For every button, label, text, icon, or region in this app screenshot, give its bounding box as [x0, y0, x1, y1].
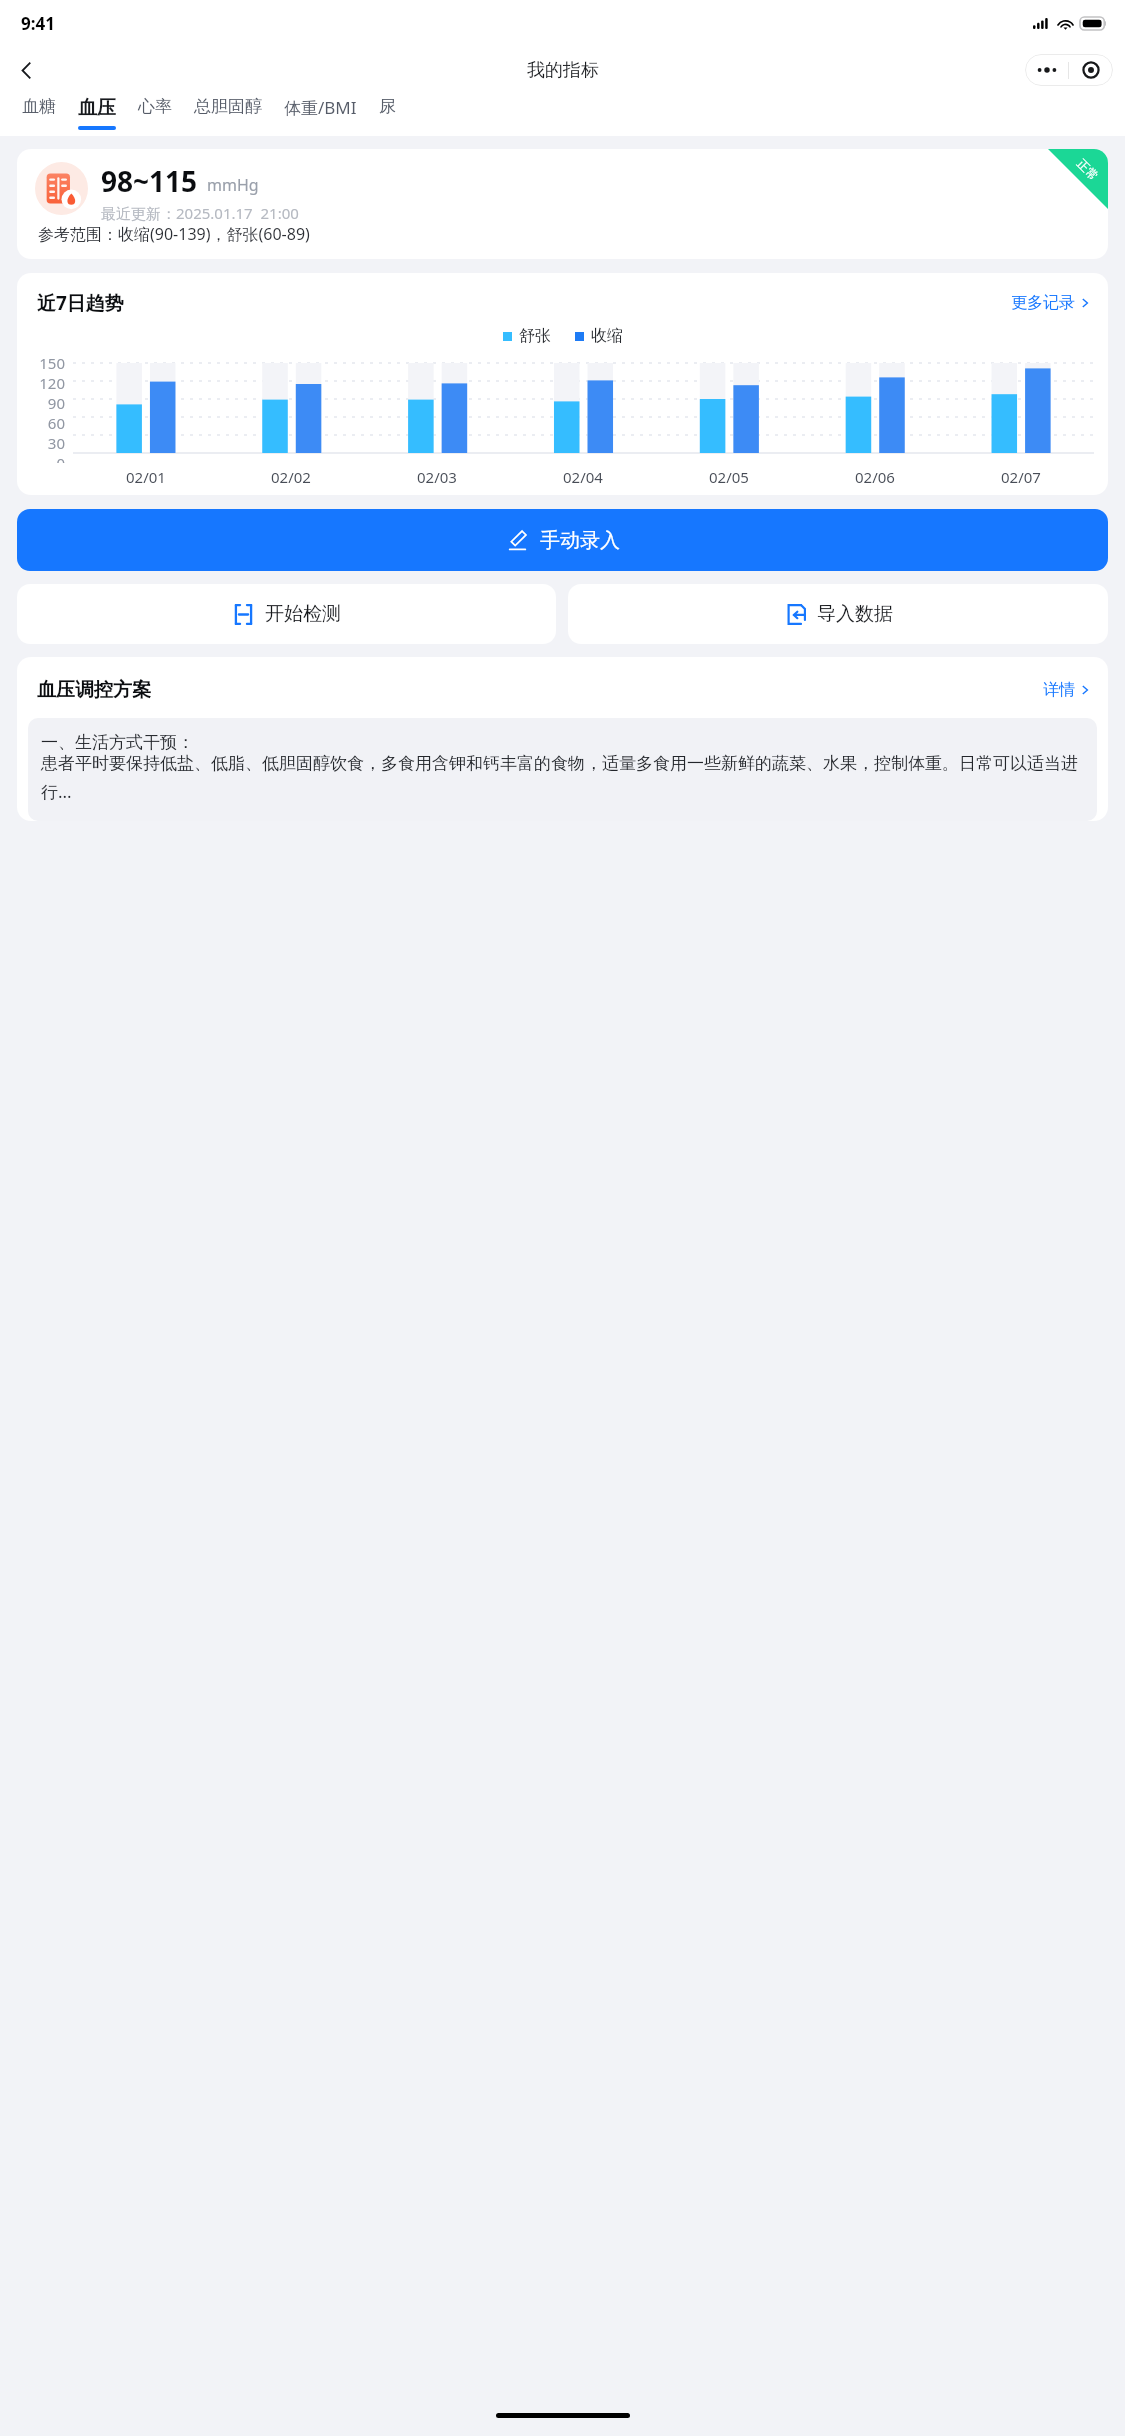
staticText: 导入数据	[817, 602, 893, 626]
staticText: 90	[47, 393, 65, 413]
staticText: 舒张	[519, 326, 551, 346]
staticText: 血压	[78, 96, 116, 120]
staticText: 参考范围：收缩(90-139)，舒张(60-89)	[38, 223, 310, 245]
staticText: 总胆固醇	[194, 96, 262, 117]
staticText: 血糖	[22, 96, 56, 117]
button[interactable]: 血压	[78, 96, 116, 136]
staticText: 正常	[1074, 156, 1102, 183]
staticText: 更多记录	[1011, 293, 1075, 313]
button[interactable]: 心率	[138, 96, 172, 136]
staticText: 02/06	[855, 467, 895, 487]
staticText: 120	[39, 373, 65, 393]
button[interactable]: 总胆固醇	[194, 96, 262, 136]
staticText: 患者平时要保持低盐、低脂、低胆固醇饮食，多食用含钾和钙丰富的食物，适量多食用一些…	[41, 753, 1084, 803]
staticText: 收缩	[591, 326, 623, 346]
button[interactable]: 手动录入	[17, 509, 1108, 571]
staticText: 02/04	[563, 467, 603, 487]
button[interactable]: 尿	[379, 96, 396, 136]
staticText: mmHg	[207, 174, 259, 196]
staticText: 30	[47, 433, 65, 453]
staticText: 近7日趋势	[37, 290, 124, 316]
staticText: 60	[47, 413, 65, 433]
staticText: 我的指标	[527, 59, 599, 82]
staticText: 9:41	[21, 12, 55, 35]
staticText: 02/07	[1001, 467, 1041, 487]
staticText: 开始检测	[265, 602, 341, 626]
button[interactable]: More options	[1025, 54, 1068, 86]
staticText: 02/01	[126, 467, 166, 487]
staticText: 手动录入	[540, 528, 620, 553]
button[interactable]: Back	[4, 48, 48, 92]
button[interactable]: 更多记录	[1011, 293, 1090, 313]
button[interactable]: Close mini program	[1069, 54, 1113, 86]
staticText: 血压调控方案	[37, 678, 151, 702]
staticText: 一、生活方式干预：	[41, 732, 194, 753]
staticText: 详情	[1043, 680, 1075, 700]
staticText: 尿	[379, 96, 396, 117]
staticText: 02/05	[709, 467, 749, 487]
staticText: 0	[56, 453, 65, 463]
button[interactable]: 体重/BMI	[284, 96, 357, 136]
button[interactable]: 导入数据	[568, 584, 1108, 644]
staticText: 最近更新：2025.01.17 21:00	[101, 203, 299, 223]
staticText: 心率	[138, 96, 172, 117]
button[interactable]: 详情	[1043, 680, 1090, 700]
staticText: 150	[39, 353, 65, 373]
staticText: 02/02	[271, 467, 311, 487]
staticText: 98~115	[101, 162, 198, 200]
staticText: 体重/BMI	[284, 96, 357, 119]
button[interactable]: 血糖	[22, 96, 56, 136]
staticText: 02/03	[417, 467, 457, 487]
button[interactable]: 正常	[17, 149, 1108, 259]
button[interactable]: 开始检测	[17, 584, 556, 644]
